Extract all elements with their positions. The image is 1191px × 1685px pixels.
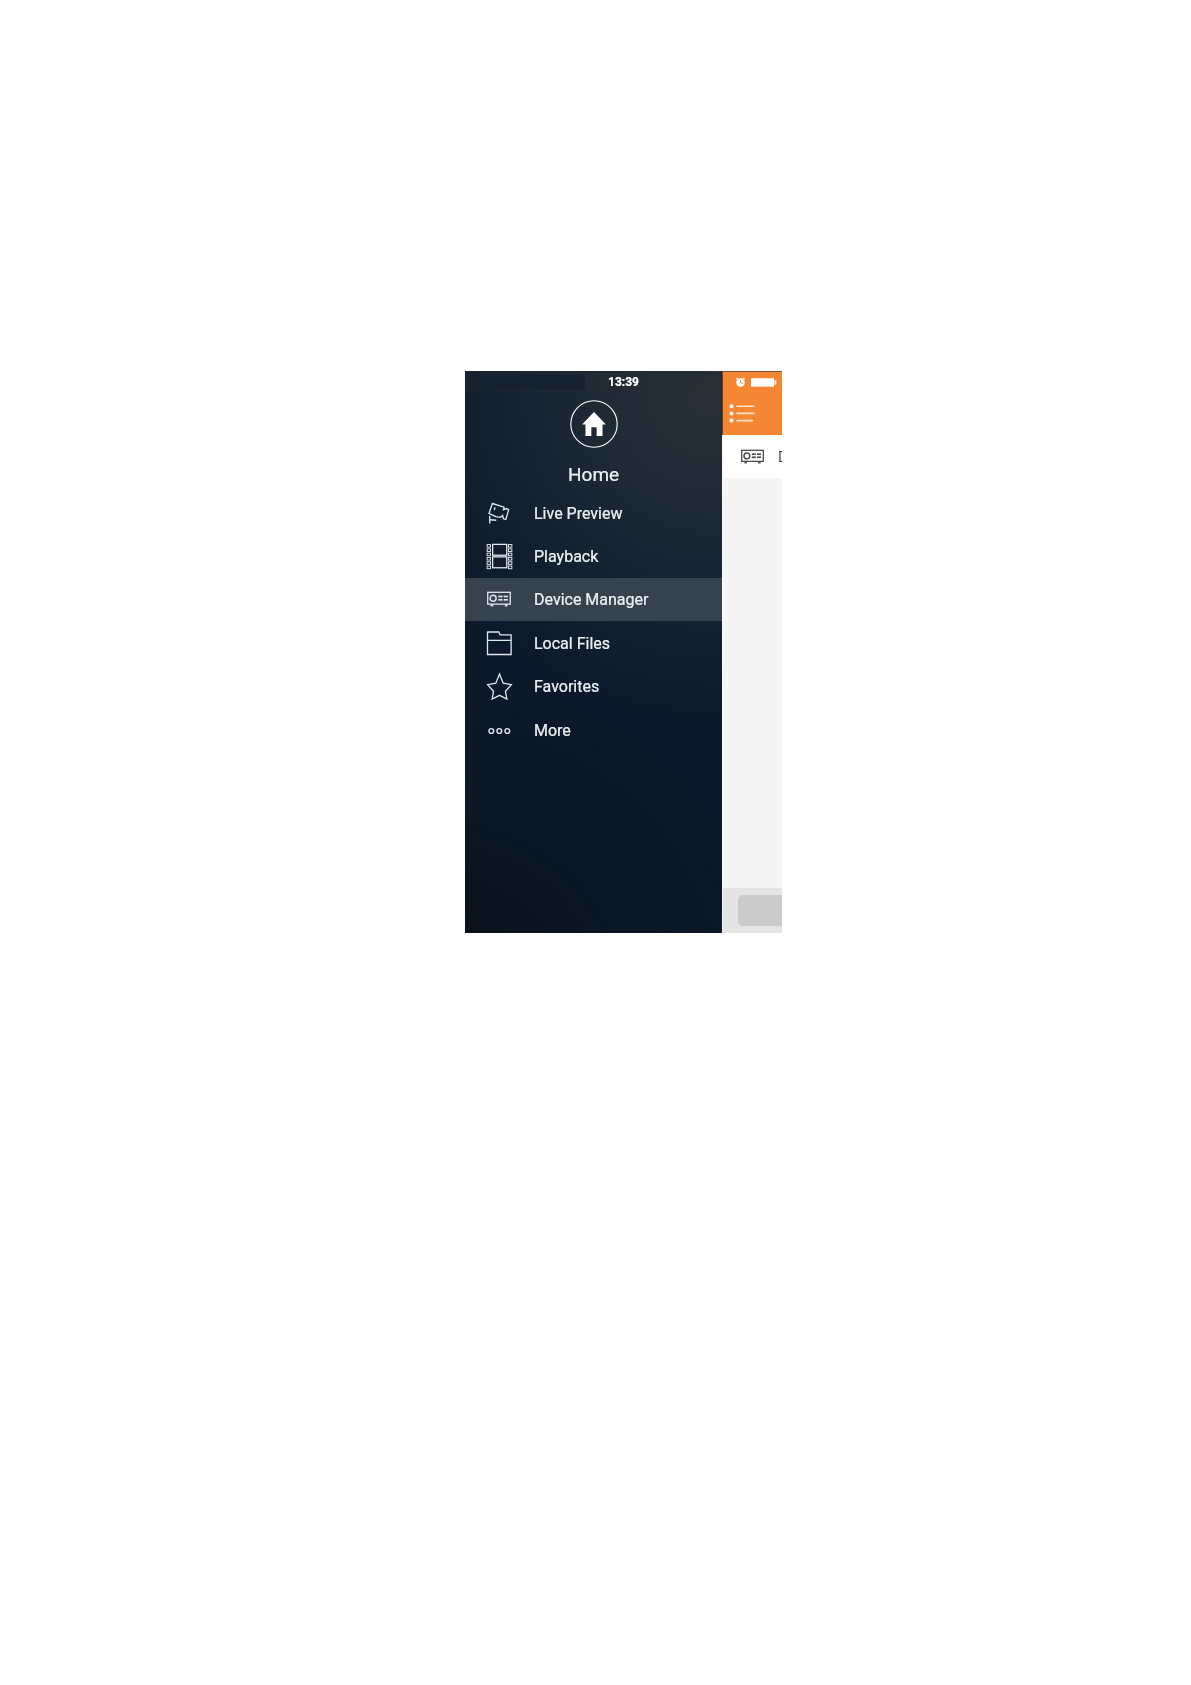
button[interactable]: Home bbox=[465, 390, 722, 488]
button[interactable]: Device Manager bbox=[465, 578, 722, 621]
staticText: Favorites bbox=[534, 677, 600, 696]
staticText: D bbox=[778, 448, 782, 466]
staticText: Home bbox=[568, 463, 620, 485]
button[interactable]: Live Preview bbox=[465, 492, 722, 535]
staticText: Live Preview bbox=[534, 504, 623, 523]
staticText: Device Manager bbox=[534, 590, 649, 609]
button[interactable]: Favorites bbox=[465, 665, 722, 708]
staticText: Playback bbox=[534, 547, 599, 566]
button[interactable]: Open navigation menu bbox=[728, 401, 758, 423]
button[interactable]: Playback bbox=[465, 535, 722, 578]
staticText: Local Files bbox=[534, 634, 611, 653]
button[interactable]: More bbox=[465, 709, 722, 752]
button[interactable]: Local Files bbox=[465, 622, 722, 665]
staticText: More bbox=[534, 721, 571, 740]
staticText: 13:39 bbox=[608, 375, 639, 389]
